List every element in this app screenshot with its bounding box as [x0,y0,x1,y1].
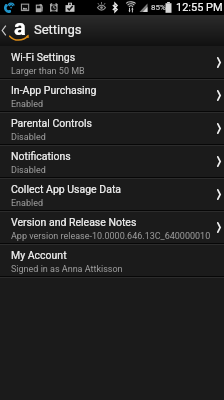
staticText: 85% [151,3,166,12]
staticText: Signed in as Anna Attkisson [11,264,123,275]
staticText: a [14,15,26,41]
button[interactable]: My Account [0,245,224,276]
button[interactable]: In-App Purchasing [0,80,224,111]
staticText: Collect App Usage Data [11,183,122,195]
staticText: Larger than 50 MB [11,66,85,77]
staticText: In-App Purchasing [11,84,97,96]
button[interactable]: Wi-Fi Settings [0,47,224,78]
staticText: Enabled [11,198,44,209]
staticText: Disabled [11,132,46,143]
button[interactable]: Collect App Usage Data [0,179,224,210]
button[interactable]: Navigate up to Amazon Appstore [0,15,224,46]
staticText: Disabled [11,165,46,176]
button[interactable]: Version and Release Notes [0,212,224,243]
staticText: Wi-Fi Settings [11,51,76,63]
button[interactable]: Parental Controls [0,113,224,144]
staticText: Enabled [11,99,44,110]
staticText: App version release-10.0000.646.13C_6400… [11,231,211,242]
button[interactable]: Notifications [0,146,224,177]
staticText: Version and Release Notes [11,216,137,228]
staticText: My Account [11,249,67,261]
staticText: Parental Controls [11,117,92,129]
staticText: 12:55 PM [176,1,223,14]
staticText: Settings [34,22,82,37]
staticText: Notifications [11,150,71,162]
